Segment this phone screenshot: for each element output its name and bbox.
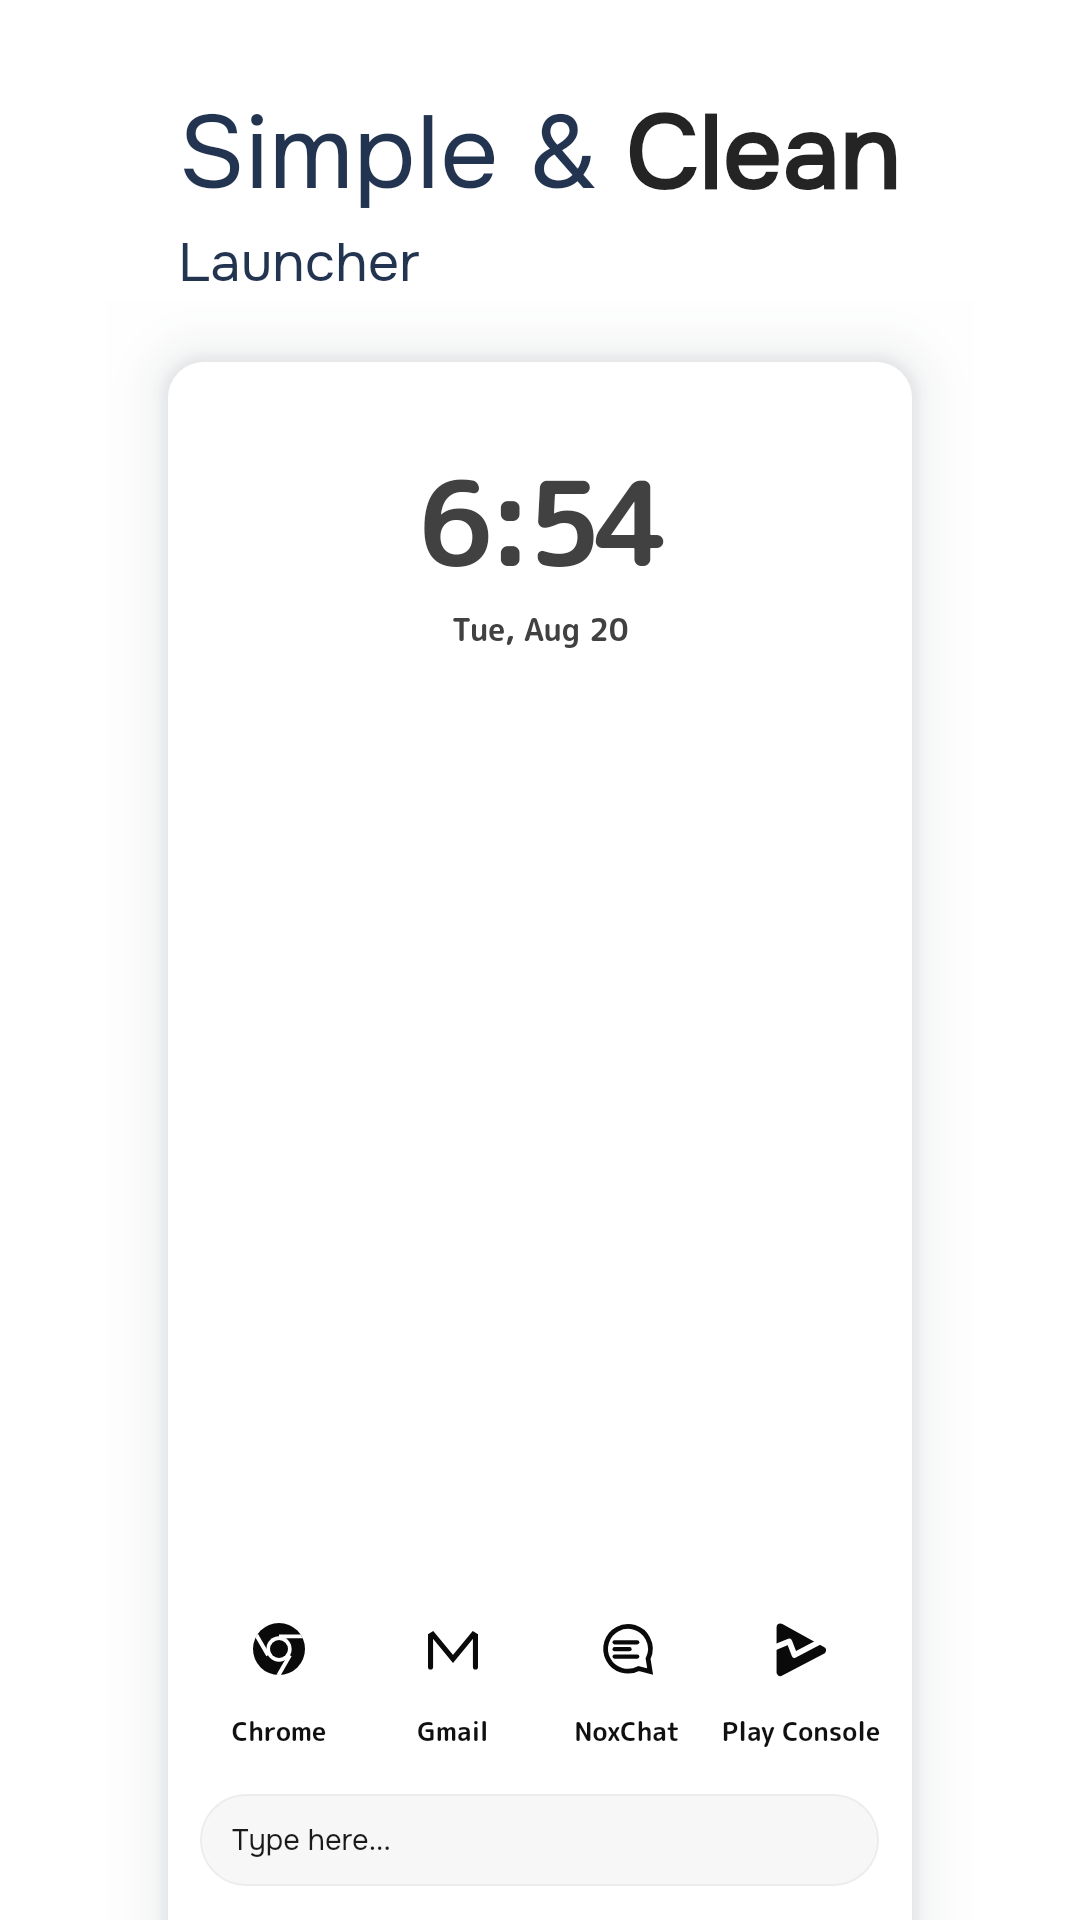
other: Chrome [253,1623,305,1675]
button[interactable]: Chrome [192,1610,366,1760]
staticText: Simple & Clean [178,88,902,219]
staticText: Launcher [178,228,420,298]
staticText: NoxChat [540,1713,714,1749]
staticText: 6:54 [168,440,912,603]
button[interactable]: Gmail [366,1610,540,1760]
staticText: Chrome [192,1713,366,1749]
staticText: Tue, Aug 20 [168,608,912,651]
button[interactable]: NoxChat [540,1610,714,1760]
staticText: Type here... [232,1822,391,1859]
button[interactable]: Type here... [200,1794,879,1886]
other: NoxChat [601,1623,653,1675]
staticText: Play Console [714,1713,888,1749]
button[interactable]: Play Console [714,1610,888,1760]
other: Play Console [775,1623,827,1675]
staticText: Gmail [366,1713,540,1749]
other: Gmail [427,1623,479,1675]
